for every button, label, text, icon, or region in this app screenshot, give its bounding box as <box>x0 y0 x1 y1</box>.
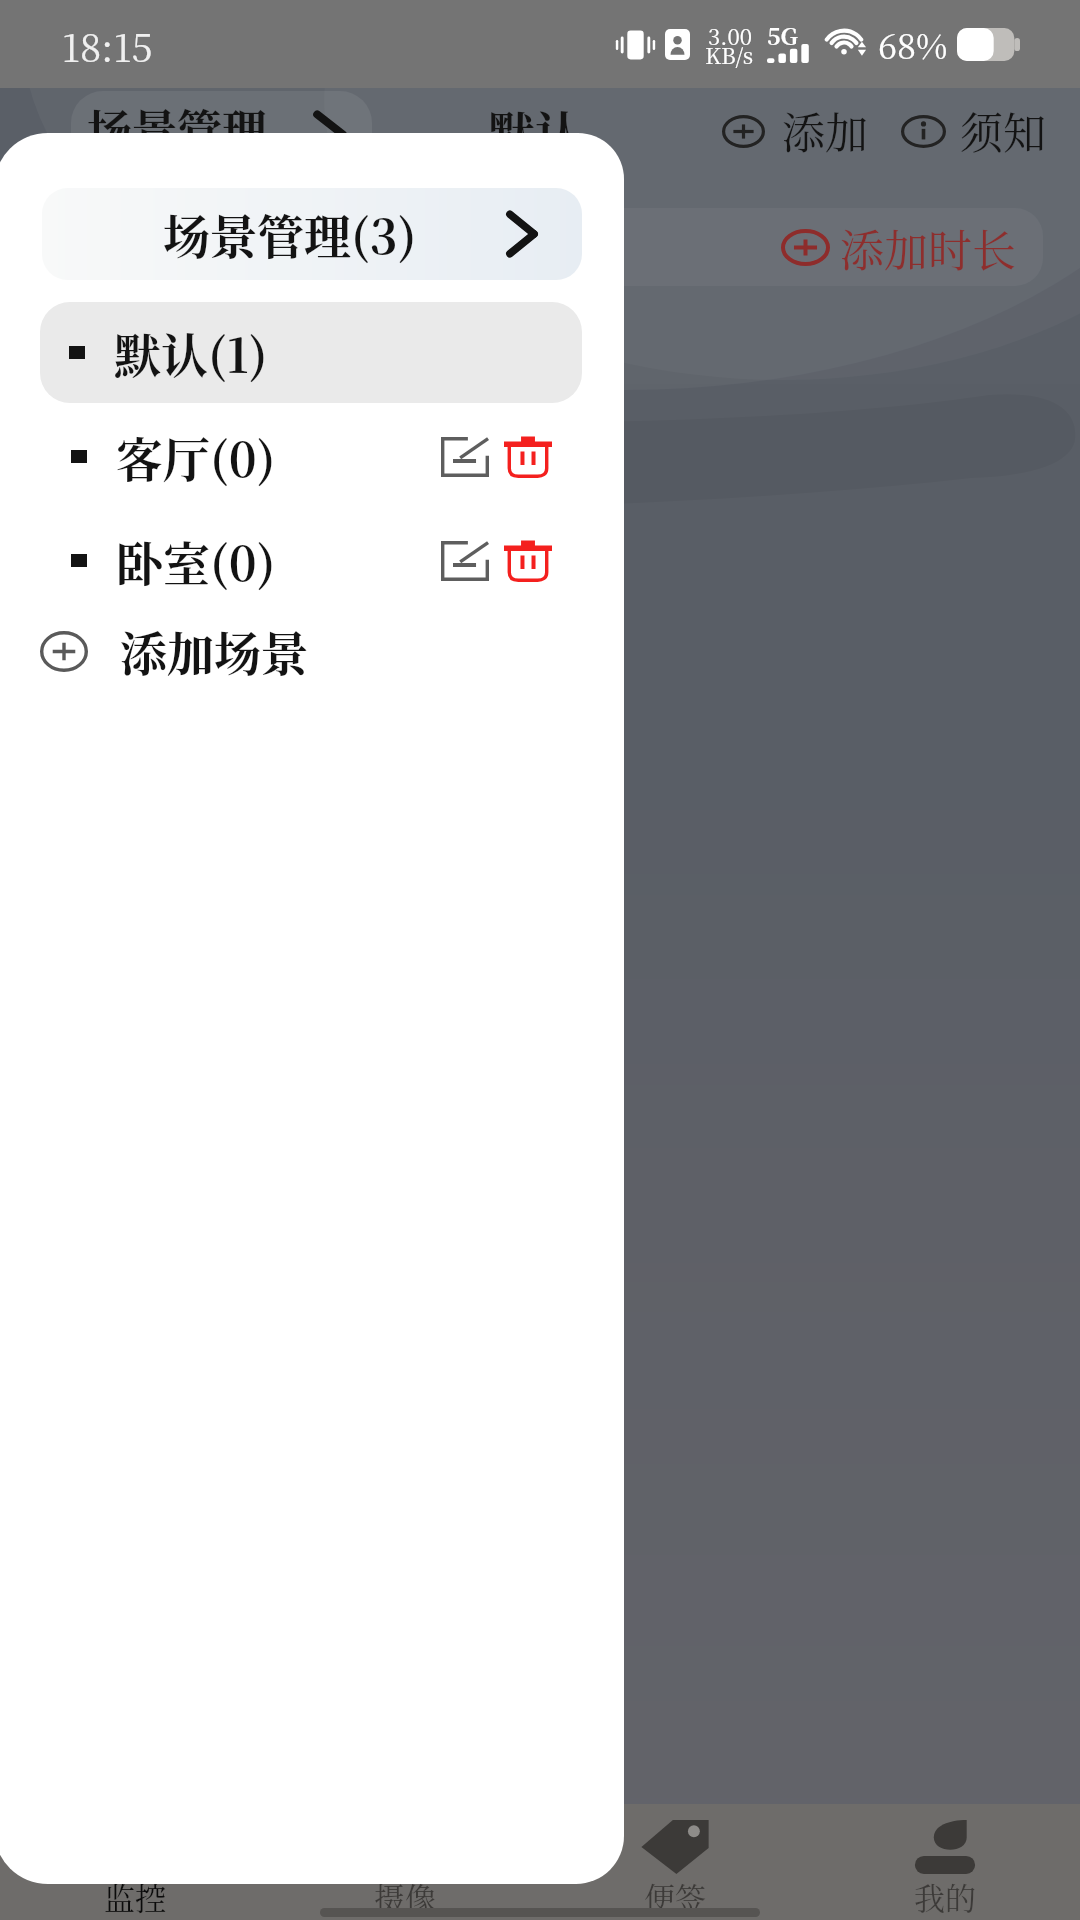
staticText: 添加 <box>782 100 868 162</box>
button[interactable]: 便签 <box>540 1804 810 1920</box>
staticText: 便签 <box>644 1874 706 1919</box>
button[interactable]: 添加场景 <box>40 609 480 693</box>
button[interactable]: Edit <box>441 541 489 581</box>
staticText: 卧室(0) <box>116 527 276 595</box>
button[interactable]: Edit <box>441 437 489 477</box>
button[interactable]: Delete <box>504 437 552 477</box>
staticText: 68% <box>878 20 948 69</box>
button[interactable]: 默认(1) <box>40 302 582 403</box>
staticText: 我的 <box>914 1874 976 1919</box>
button[interactable]: Delete <box>504 541 552 581</box>
staticText: 5G <box>767 19 798 52</box>
button[interactable]: 场景管理 <box>71 91 372 165</box>
staticText: 默认 <box>488 97 582 165</box>
staticText: 18:15 <box>62 18 153 73</box>
button[interactable]: 添加时长 <box>343 208 1043 286</box>
staticText: 监控 <box>104 1874 166 1919</box>
staticText: 摄像 <box>374 1874 436 1919</box>
staticText: 客厅(0) <box>116 423 276 491</box>
button[interactable]: 场景管理(3) <box>42 188 582 280</box>
staticText: 默认(1) <box>114 319 268 387</box>
button[interactable]: Add <box>722 100 868 162</box>
staticText: 场景管理(3) <box>163 200 417 268</box>
staticText: 场景管理 <box>87 96 268 161</box>
button[interactable]: 客厅(0) <box>71 405 552 509</box>
button[interactable]: 我的 <box>810 1804 1080 1920</box>
button[interactable]: 卧室(0) <box>71 509 552 613</box>
staticText: 添加时长 <box>840 216 1016 279</box>
button[interactable]: Info <box>901 100 1046 162</box>
button[interactable]: 监控 <box>0 1804 270 1920</box>
staticText: 须知 <box>960 100 1046 162</box>
staticText: 添加场景 <box>120 617 308 685</box>
staticText: 3.00 <box>708 20 752 52</box>
button[interactable]: 摄像 <box>270 1804 540 1920</box>
staticText: KB/s <box>705 39 754 71</box>
